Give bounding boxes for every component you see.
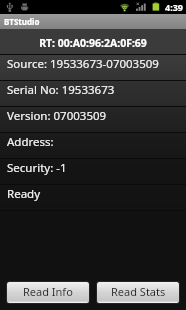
staticText: Version: 07003509 — [7, 108, 107, 124]
button[interactable]: Read Stats — [97, 282, 179, 303]
staticText: Read Info — [23, 284, 73, 299]
staticText: Address: — [7, 134, 54, 150]
staticText: Source: 19533673-07003509 — [7, 56, 159, 72]
staticText: BTStudio — [4, 16, 40, 27]
staticText: Security: -1 — [7, 160, 67, 176]
staticText: Read Stats — [111, 284, 166, 299]
button[interactable]: Read Info — [7, 282, 89, 303]
staticText: 4:39 — [165, 1, 183, 13]
button[interactable]: Ready — [0, 185, 186, 210]
button[interactable]: Security: -1 — [0, 159, 186, 184]
button[interactable]: Source: 19533673-07003509 — [0, 55, 186, 80]
staticText: Ready — [7, 186, 41, 202]
button[interactable]: Version: 07003509 — [0, 107, 186, 132]
staticText: Serial No: 19533673 — [7, 82, 115, 98]
button[interactable]: Serial No: 19533673 — [0, 81, 186, 106]
button[interactable]: Address: — [0, 133, 186, 158]
staticText: RT: 00:A0:96:2A:0F:69 — [39, 36, 147, 50]
